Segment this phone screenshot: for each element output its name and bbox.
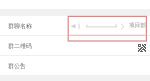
staticText: 群公告	[8, 62, 26, 70]
staticText: 群二维码	[8, 42, 32, 50]
other: Group QR code	[138, 44, 146, 52]
staticText: 项目部	[129, 22, 146, 29]
button[interactable]: 群二维码	[0, 36, 150, 55]
button[interactable]: 群公告	[0, 56, 150, 75]
staticText: 群聊名称	[8, 22, 32, 30]
button[interactable]: 群聊名称	[0, 16, 150, 35]
